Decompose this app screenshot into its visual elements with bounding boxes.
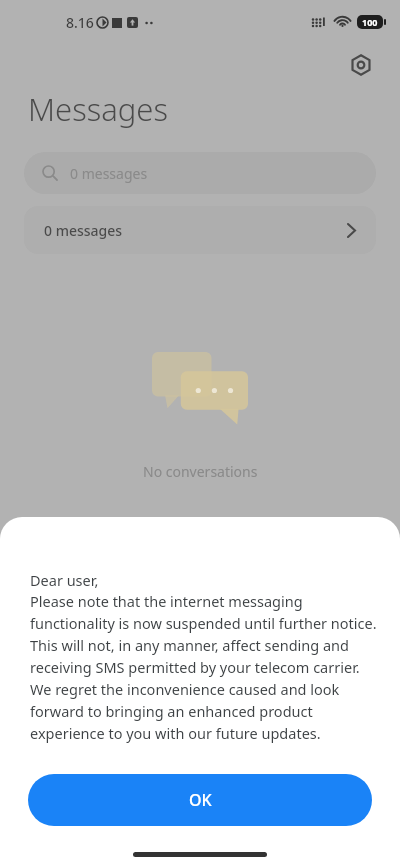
staticText: 8.16 (66, 13, 94, 32)
staticText: 100 (362, 16, 378, 28)
button[interactable]: 0 messages (24, 152, 376, 194)
staticText: No conversations (143, 462, 258, 481)
staticText: 0 messages (70, 164, 148, 183)
staticText: 0 messages (44, 221, 123, 240)
staticText: OK (189, 789, 212, 811)
staticText: Messages (28, 88, 168, 130)
button[interactable]: OK (28, 774, 372, 826)
staticText: Dear user, Please note that the internet… (30, 570, 382, 743)
button[interactable]: Settings (344, 48, 378, 82)
button[interactable]: 0 messages (24, 206, 376, 254)
